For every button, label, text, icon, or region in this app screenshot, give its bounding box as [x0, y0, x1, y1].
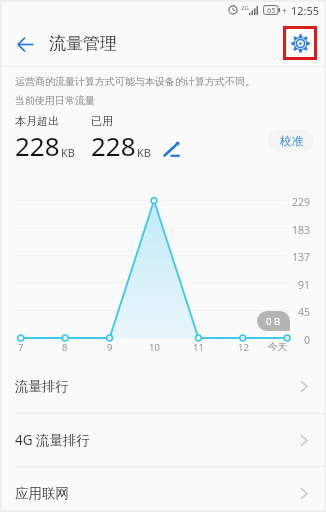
staticText: 183 [292, 223, 311, 237]
button[interactable]: Settings [283, 26, 317, 60]
staticText: 10 [149, 341, 160, 354]
staticText: 运营商的流量计算方式可能与本设备的计算方式不同。 [15, 75, 255, 88]
staticText: KB [61, 145, 75, 160]
staticText: 229 [292, 195, 311, 209]
staticText: 45 [298, 305, 311, 319]
staticText: 9 [107, 341, 113, 354]
staticText: 校准 [280, 134, 303, 148]
staticText: 流量管理 [49, 33, 117, 54]
staticText: 当前使用日常流量 [15, 94, 95, 107]
staticText: 11 [193, 341, 204, 354]
staticText: 91 [298, 278, 311, 292]
staticText: 今天 [268, 341, 287, 353]
staticText: 137 [292, 250, 311, 264]
button[interactable]: 流量排行 [0, 360, 326, 413]
button[interactable]: Edit [159, 138, 183, 160]
button[interactable]: 校准 [268, 130, 314, 152]
staticText: 7 [18, 341, 24, 354]
staticText: + [282, 4, 288, 16]
staticText: 4G 流量排行 [15, 431, 91, 449]
button[interactable]: 4G 流量排行 [0, 414, 326, 466]
staticText: 已用 [91, 114, 113, 128]
staticText: 0 [304, 333, 311, 347]
staticText: 228 [15, 128, 60, 163]
staticText: 2G [241, 4, 249, 12]
staticText: 12 [238, 341, 249, 354]
button[interactable]: 应用联网 [0, 467, 326, 512]
staticText: 228 [91, 128, 136, 163]
staticText: 8 [62, 341, 68, 354]
staticText: 65 [267, 5, 276, 15]
button[interactable]: Back [9, 28, 41, 60]
staticText: 流量排行 [15, 378, 69, 395]
staticText: 0 B [266, 315, 281, 328]
staticText: 本月超出 [15, 114, 59, 128]
staticText: 应用联网 [15, 485, 69, 502]
staticText: 12:55 [291, 3, 320, 18]
staticText: KB [137, 145, 151, 160]
